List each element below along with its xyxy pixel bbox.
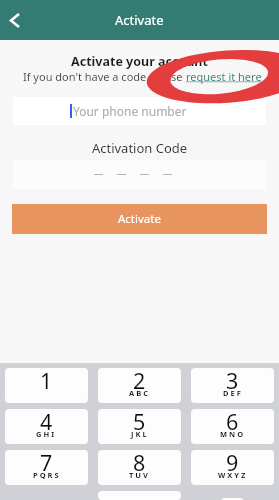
staticText: ABC [129, 388, 150, 398]
button[interactable]: Activate [12, 204, 267, 234]
button[interactable]: 1 [5, 368, 88, 403]
button[interactable]: 3 [191, 368, 274, 403]
button[interactable]: 0 [98, 491, 181, 500]
staticText: 7 [40, 450, 53, 477]
button[interactable]: 9 [191, 450, 274, 485]
staticText: Activation Code [0, 139, 279, 157]
staticText: MNO [220, 429, 246, 439]
staticText: 1 [40, 368, 53, 395]
staticText: 8 [133, 450, 146, 477]
button[interactable]: 8 [98, 450, 181, 485]
staticText: 2 [133, 368, 146, 395]
staticText: 6 [226, 409, 239, 436]
staticText: Activate [118, 211, 161, 227]
button[interactable]: 7 [5, 450, 88, 485]
staticText: If you don't have a code please [23, 69, 186, 84]
staticText: 9 [226, 450, 239, 477]
staticText: TUV [129, 470, 150, 480]
staticText: GHI [36, 429, 57, 439]
staticText: 4 [40, 409, 53, 436]
button[interactable]: Back [2, 7, 28, 33]
staticText: Activate [115, 11, 164, 29]
staticText: 3 [226, 368, 239, 395]
staticText: Activate your account [0, 53, 279, 70]
button[interactable] [13, 160, 266, 189]
button[interactable]: 6 [191, 409, 274, 444]
button[interactable]: 4 [5, 409, 88, 444]
button[interactable]: Delete [186, 491, 279, 500]
staticText: PQRS [33, 470, 61, 480]
button[interactable]: Your phone number [13, 97, 266, 125]
button[interactable]: 2 [98, 368, 181, 403]
staticText: Your phone number [73, 103, 187, 119]
button[interactable]: request it here [186, 69, 262, 84]
staticText: 5 [133, 409, 146, 436]
staticText: DEF [223, 388, 243, 398]
button[interactable]: 5 [98, 409, 181, 444]
staticText: JKL [131, 429, 149, 439]
staticText: WXYZ [218, 470, 248, 480]
